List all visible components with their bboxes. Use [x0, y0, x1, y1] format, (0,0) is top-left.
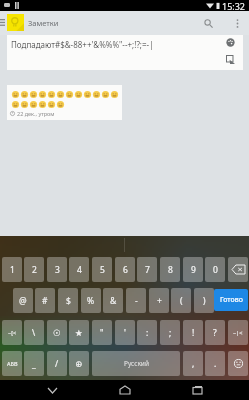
button[interactable]: 8 [160, 257, 180, 282]
staticText: _ [32, 358, 36, 370]
button[interactable]: ) [194, 288, 214, 313]
staticText: 15:32 [222, 0, 246, 11]
staticText: Готово [220, 295, 243, 305]
button[interactable]: $ [58, 288, 78, 313]
button[interactable]: # [35, 288, 55, 313]
button[interactable]: : [137, 320, 157, 345]
staticText: Заметки [28, 18, 59, 28]
button[interactable]: Back [32, 380, 72, 400]
button[interactable]: 1 [2, 257, 22, 282]
button[interactable]: 2 [24, 257, 44, 282]
button[interactable]: Recent apps [177, 380, 217, 400]
button[interactable]: Backspace [228, 257, 248, 282]
staticText: Русский [124, 359, 149, 368]
button[interactable]: Emoji [228, 351, 248, 376]
staticText: 8 [168, 264, 173, 276]
staticText: & [110, 295, 117, 307]
staticText: ! [192, 327, 195, 339]
staticText: @ [19, 295, 27, 307]
button[interactable]: Home [105, 380, 145, 400]
button[interactable]: 4 [69, 257, 89, 282]
button[interactable]: Change colour [223, 35, 237, 49]
button[interactable]: . [205, 351, 225, 376]
staticText: . [214, 358, 217, 370]
button[interactable]: ~|< [228, 320, 248, 345]
staticText: ; [169, 327, 172, 339]
staticText: 3 [55, 264, 60, 276]
button[interactable]: / [47, 351, 67, 376]
staticText: - [135, 295, 138, 307]
button[interactable]: ~[< [2, 320, 22, 345]
button[interactable]: ☉ [47, 320, 67, 345]
staticText: , [192, 358, 195, 370]
staticText: ☉ [53, 328, 61, 338]
staticText: 1 [10, 264, 15, 276]
staticText: 9 [191, 264, 196, 276]
button[interactable]: Search [196, 11, 220, 35]
staticText: Подпадают#$&-88++'&%%%"--+;!?;=-| [11, 39, 154, 50]
button[interactable]: Resize note [223, 52, 237, 66]
staticText: ? [213, 327, 217, 339]
button[interactable]: 3 [47, 257, 67, 282]
staticText: 2 [32, 264, 37, 276]
staticText: ) [203, 295, 206, 307]
staticText: ★ [75, 328, 83, 338]
button[interactable]: 22 дек., утром [7, 85, 122, 120]
button[interactable]: & [103, 288, 123, 313]
staticText: ( [180, 295, 183, 307]
staticText: 5 [100, 264, 105, 276]
button[interactable]: Open navigation drawer [0, 11, 8, 35]
button[interactable]: Русский [92, 351, 180, 376]
staticText: ~[< [8, 329, 17, 336]
staticText: $ [66, 295, 71, 307]
staticText: # [42, 295, 48, 307]
staticText: ~|< [233, 329, 243, 336]
button[interactable]: ⊕ [69, 351, 89, 376]
staticText: \ [32, 327, 36, 339]
button[interactable]: АБВ [2, 351, 22, 376]
staticText: ⊕ [75, 359, 83, 369]
staticText: ' [124, 327, 126, 339]
staticText: 22 дек., утром [17, 110, 55, 117]
button[interactable]: ; [160, 320, 180, 345]
staticText: " [100, 327, 104, 339]
staticText: 6 [123, 264, 128, 276]
staticText: 4 [77, 264, 82, 276]
button[interactable]: % [81, 288, 101, 313]
button[interactable]: ? [205, 320, 225, 345]
button[interactable]: 0 [205, 257, 225, 282]
button[interactable]: _ [24, 351, 44, 376]
button[interactable]: - [126, 288, 146, 313]
button[interactable]: More options [225, 11, 249, 35]
button[interactable]: 5 [92, 257, 112, 282]
button[interactable]: Готово [214, 289, 248, 311]
button[interactable]: , [183, 351, 203, 376]
button[interactable]: + [149, 288, 169, 313]
button[interactable]: ! [183, 320, 203, 345]
staticText: % [87, 295, 95, 307]
staticText: : [146, 327, 149, 339]
staticText: + [157, 295, 162, 307]
button[interactable]: \ [24, 320, 44, 345]
button[interactable]: ( [171, 288, 191, 313]
button[interactable]: 7 [137, 257, 157, 282]
staticText: 0 [213, 264, 218, 276]
button[interactable]: " [92, 320, 112, 345]
staticText: 7 [145, 264, 150, 276]
staticText: / [55, 358, 59, 370]
button[interactable]: @ [13, 288, 33, 313]
button[interactable]: ' [115, 320, 135, 345]
staticText: АБВ [7, 360, 18, 367]
button[interactable]: 9 [183, 257, 203, 282]
button[interactable]: 6 [115, 257, 135, 282]
button[interactable]: ★ [69, 320, 89, 345]
